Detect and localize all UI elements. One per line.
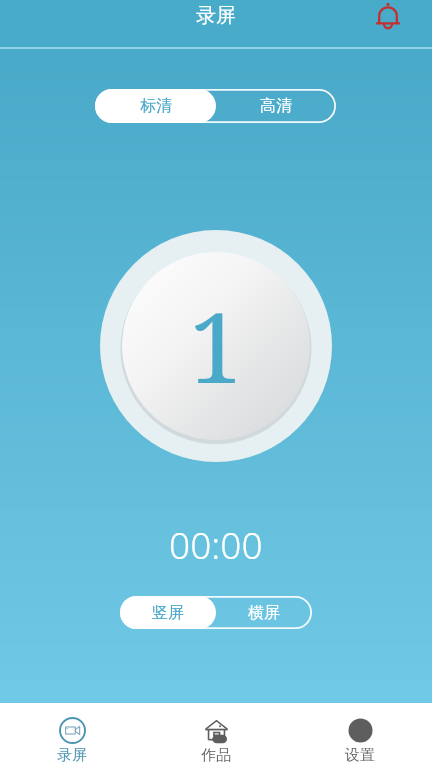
button[interactable]: 录屏 bbox=[0, 703, 144, 768]
staticText: 作品 bbox=[201, 746, 231, 765]
button[interactable]: 横屏 bbox=[216, 596, 312, 629]
staticText: 1 bbox=[189, 280, 243, 411]
staticText: 高清 bbox=[260, 96, 292, 116]
staticText: 竖屏 bbox=[152, 603, 184, 623]
button[interactable]: Notifications bbox=[374, 2, 402, 30]
button[interactable]: 设置 bbox=[288, 703, 432, 768]
button[interactable]: Start recording bbox=[98, 230, 334, 462]
staticText: 标清 bbox=[140, 96, 172, 116]
staticText: 录屏 bbox=[196, 3, 236, 28]
button[interactable]: 作品 bbox=[144, 703, 288, 768]
staticText: 横屏 bbox=[248, 603, 280, 623]
staticText: 00:00 bbox=[169, 519, 263, 569]
staticText: 录屏 bbox=[57, 746, 87, 765]
button[interactable]: 高清 bbox=[216, 89, 336, 123]
button[interactable]: 标清 bbox=[95, 89, 216, 123]
button[interactable]: 竖屏 bbox=[120, 596, 216, 629]
staticText: 设置 bbox=[345, 746, 375, 765]
